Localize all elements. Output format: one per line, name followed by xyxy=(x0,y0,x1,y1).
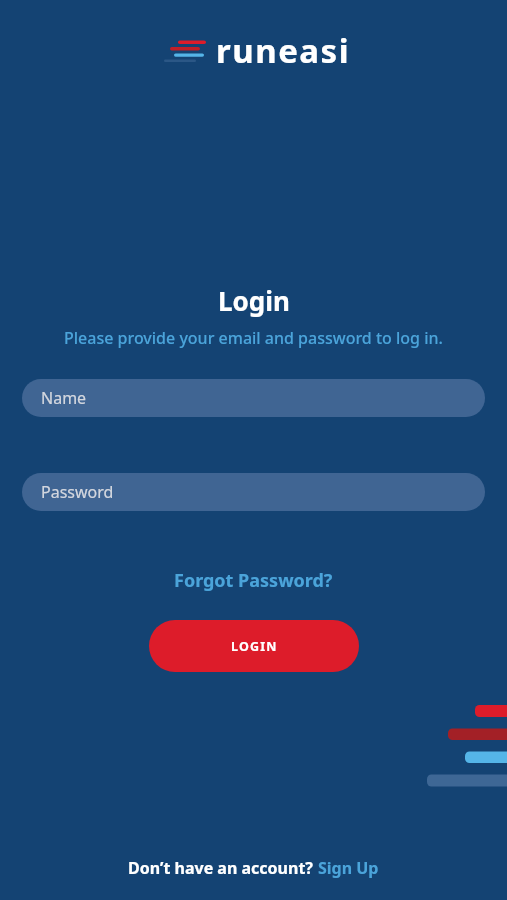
button[interactable]: LOGIN xyxy=(149,620,359,672)
button[interactable]: Forgot Password? xyxy=(174,568,333,593)
staticText: Sign Up xyxy=(318,857,379,879)
button[interactable]: Name xyxy=(22,379,485,417)
staticText: Please provide your email and password t… xyxy=(64,327,443,349)
staticText: Name xyxy=(41,387,87,409)
staticText: Don’t have an account? xyxy=(128,857,318,879)
staticText: Password xyxy=(41,481,114,503)
staticText: runeasi xyxy=(216,28,351,73)
button[interactable]: Don’t have an account? xyxy=(128,857,379,879)
button[interactable]: Password xyxy=(22,473,485,511)
staticText: Login xyxy=(218,283,290,318)
staticText: LOGIN xyxy=(231,638,278,655)
